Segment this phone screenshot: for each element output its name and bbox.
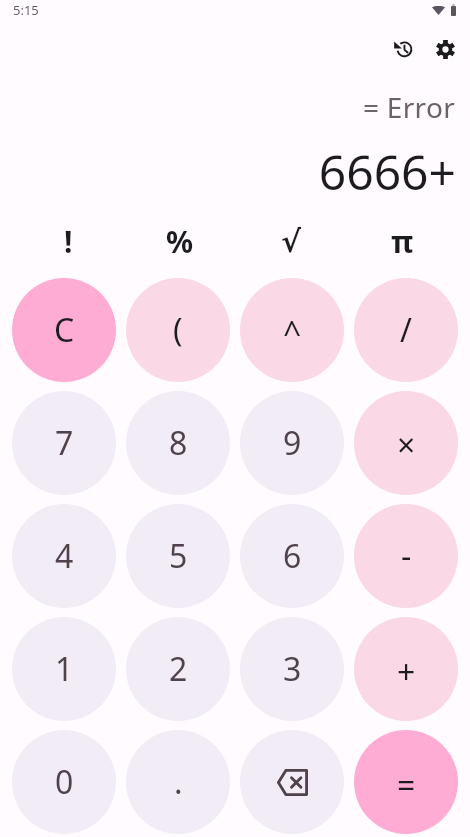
staticText: 6666+ — [0, 139, 456, 204]
button[interactable]: 4 — [12, 504, 116, 608]
button[interactable]: 8 — [126, 391, 230, 495]
staticText: 3 — [283, 647, 302, 691]
staticText: π — [391, 221, 414, 262]
button[interactable]: 7 — [12, 391, 116, 495]
button[interactable]: + — [354, 617, 458, 721]
button[interactable]: ! — [16, 218, 121, 264]
staticText: . — [174, 760, 183, 804]
staticText: 5:15 — [13, 1, 39, 19]
staticText: 9 — [283, 421, 302, 465]
button[interactable]: Backspace — [240, 730, 344, 834]
button[interactable]: - — [354, 504, 458, 608]
button[interactable]: 3 — [240, 617, 344, 721]
staticText: % — [166, 221, 194, 262]
button[interactable]: History — [382, 28, 424, 70]
staticText: 7 — [55, 421, 74, 465]
button[interactable]: ^ — [240, 278, 344, 382]
other: Backspace — [277, 769, 308, 796]
staticText: 5 — [169, 534, 188, 578]
button[interactable]: 9 — [240, 391, 344, 495]
button[interactable]: 5 — [126, 504, 230, 608]
staticText: C — [54, 308, 75, 352]
staticText: / — [400, 308, 412, 352]
button[interactable]: 6 — [240, 504, 344, 608]
staticText: 1 — [55, 647, 74, 691]
staticText: = — [397, 763, 416, 807]
button[interactable]: π — [350, 218, 454, 264]
button[interactable]: × — [354, 391, 458, 495]
button[interactable]: % — [128, 218, 232, 264]
staticText: = Error — [0, 88, 455, 126]
button[interactable]: / — [354, 278, 458, 382]
button[interactable]: 0 — [12, 730, 116, 834]
staticText: - — [401, 534, 412, 578]
staticText: 4 — [55, 534, 74, 578]
button[interactable]: 2 — [126, 617, 230, 721]
button[interactable]: = — [354, 730, 458, 834]
staticText: 6 — [283, 534, 302, 578]
staticText: × — [397, 423, 416, 467]
staticText: ! — [64, 221, 73, 262]
button[interactable]: 1 — [12, 617, 116, 721]
button[interactable]: ( — [126, 278, 230, 382]
button[interactable]: . — [126, 730, 230, 834]
staticText: ( — [173, 308, 183, 352]
staticText: 8 — [169, 421, 188, 465]
button[interactable]: Settings — [424, 28, 466, 70]
button[interactable]: √ — [239, 218, 343, 264]
button[interactable]: C — [12, 278, 116, 382]
staticText: + — [397, 650, 416, 694]
staticText: 0 — [55, 760, 74, 804]
staticText: √ — [281, 224, 302, 259]
staticText: ^ — [283, 311, 302, 355]
staticText: 2 — [169, 647, 188, 691]
